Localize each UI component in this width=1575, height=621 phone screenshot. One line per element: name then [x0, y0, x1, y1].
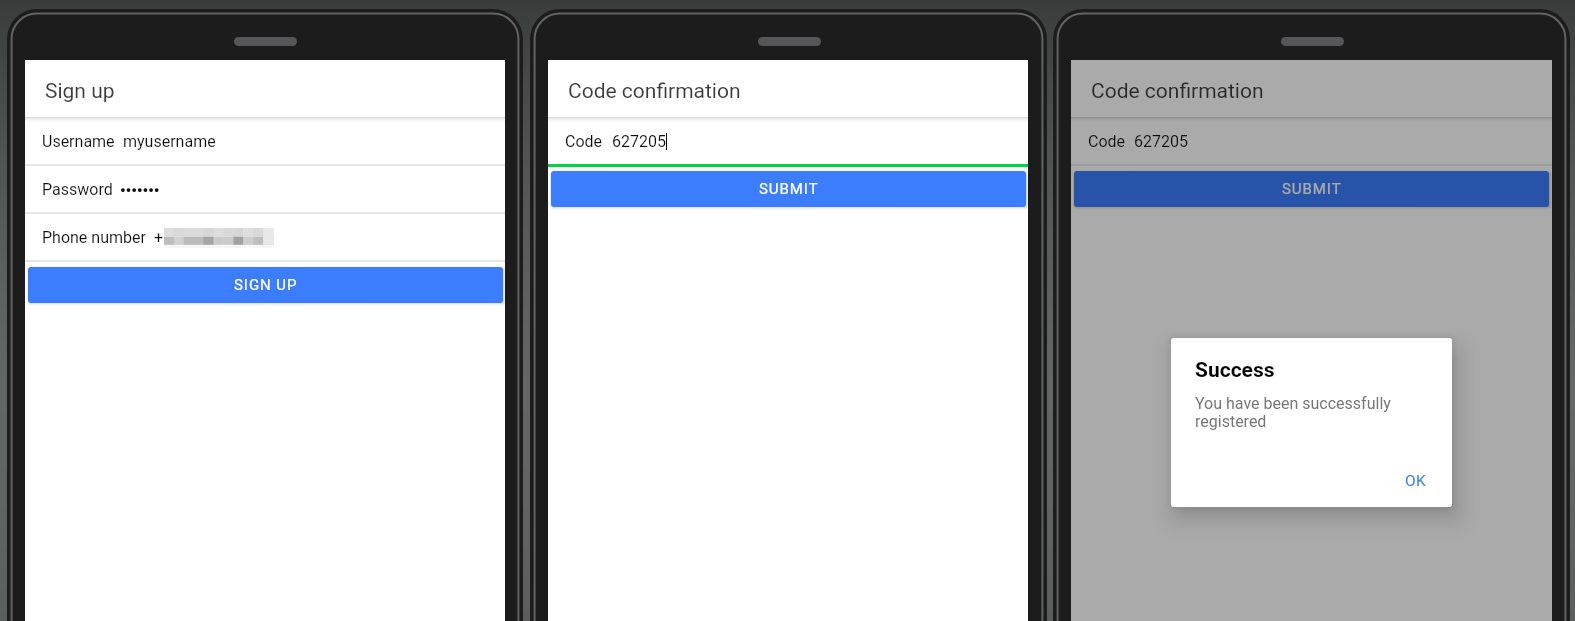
staticText: 627205 [1134, 132, 1188, 151]
button[interactable]: Username [25, 117, 505, 165]
staticText: Sign up [45, 79, 115, 104]
staticText: Phone number [42, 228, 146, 247]
button[interactable]: SUBMIT [1074, 171, 1549, 207]
staticText: Code [1088, 132, 1126, 151]
button[interactable]: Code [1071, 117, 1552, 165]
staticText: Code confirmation [568, 79, 741, 104]
button[interactable]: SUBMIT [551, 171, 1026, 207]
staticText: SIGN UP [234, 276, 298, 294]
button[interactable]: Phone number [25, 213, 505, 261]
staticText: 627205 [612, 132, 666, 151]
other: Phone number hidden [164, 228, 273, 248]
staticText: Password [42, 180, 113, 199]
staticText: Code [565, 132, 603, 151]
button[interactable]: Dismiss dialog [1071, 60, 1552, 621]
staticText: myusername [123, 132, 216, 151]
staticText: Username [42, 132, 115, 151]
staticText: Success [1195, 358, 1275, 383]
staticText: SUBMIT [1282, 180, 1342, 198]
staticText: Code confirmation [1091, 79, 1264, 104]
staticText: You have been successfully registered [1195, 394, 1391, 431]
staticText: + [154, 228, 164, 247]
button[interactable]: Code [548, 117, 1028, 165]
button[interactable]: OK [1400, 468, 1431, 494]
button[interactable]: SIGN UP [28, 267, 503, 303]
staticText: OK [1405, 472, 1426, 490]
button[interactable]: Password [25, 165, 505, 213]
staticText: SUBMIT [759, 180, 819, 198]
